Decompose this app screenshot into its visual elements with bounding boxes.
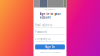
staticText: Sign In (45, 45, 55, 49)
staticText: Company ID (35, 37, 51, 40)
staticText: Password (35, 30, 47, 34)
button[interactable]: Sign In (35, 44, 65, 49)
staticText: WELCOME BACK (44, 9, 55, 10)
button[interactable]: Don't have an account? Sign up (39, 49, 60, 53)
staticText: Email address (35, 23, 52, 27)
staticText: Sign in to your account (39, 12, 60, 19)
staticText: Don't have an account? Sign up (39, 52, 60, 53)
